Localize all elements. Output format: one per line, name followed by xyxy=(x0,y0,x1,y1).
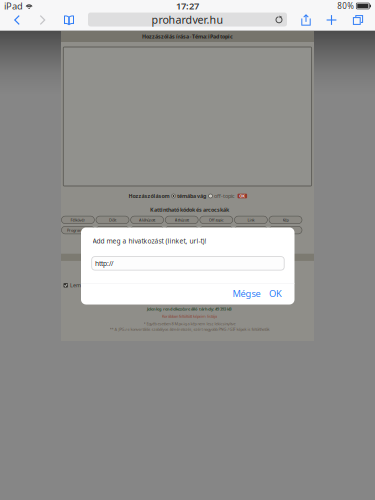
staticText: * Egyéb esetben 8 Mpx-ig a kép nem lesz … xyxy=(144,321,236,326)
staticText: Felsorolás xyxy=(138,227,156,233)
button[interactable]: Aláhúzott xyxy=(131,216,164,224)
staticText: Táblázat xyxy=(175,227,189,233)
staticText: Idézet xyxy=(107,227,117,233)
staticText: Cím xyxy=(247,227,255,233)
staticText: http:// xyxy=(95,259,113,268)
staticText: 17:27 xyxy=(176,0,199,12)
button[interactable]: Dőlt xyxy=(96,216,129,224)
button[interactable]: Áthúzott xyxy=(165,216,198,224)
button[interactable]: Bookmarks xyxy=(59,10,79,29)
staticText: Dőlt xyxy=(109,217,116,222)
button[interactable]: Táblázat xyxy=(165,226,198,234)
staticText: prohardver.hu xyxy=(151,12,223,27)
button[interactable]: Kép xyxy=(269,216,302,224)
button[interactable]: prohardver.hu xyxy=(88,12,287,26)
button[interactable]: Felsorolás xyxy=(131,226,164,234)
button[interactable]: Kiemelés xyxy=(200,226,233,234)
staticText: Kattintható kódok és arcocskák xyxy=(150,206,229,213)
button[interactable]: Link xyxy=(234,216,267,224)
staticText: Off-topic xyxy=(209,217,224,222)
staticText: Programkód xyxy=(67,227,89,233)
staticText: Korábban feltöltött képeim listája xyxy=(162,313,217,319)
staticText: Mégse xyxy=(233,287,261,300)
staticText: témába vág xyxy=(177,192,206,200)
staticText: Kép xyxy=(282,217,288,222)
staticText: ** A JPG-re konvertálás szabályos átmére… xyxy=(110,326,270,332)
staticText: off-topic xyxy=(214,192,235,200)
staticText: Aláhúzott xyxy=(139,217,155,222)
button[interactable]: OK xyxy=(264,283,286,303)
staticText: OK xyxy=(239,193,245,199)
button[interactable]: Programkód xyxy=(61,226,94,234)
button[interactable]: Mégse xyxy=(231,283,263,303)
button[interactable]: Share xyxy=(298,10,314,29)
staticText: Félkövér xyxy=(70,217,85,222)
staticText: Galéria xyxy=(279,227,292,233)
button[interactable]: Cím xyxy=(234,226,267,234)
button[interactable]: New Tab xyxy=(323,10,339,29)
staticText: Áthúzott xyxy=(175,217,189,222)
staticText: Hozzászólás írása · Téma: iPad topic xyxy=(142,33,233,40)
staticText: Link xyxy=(247,217,254,222)
staticText: Add meg a hivatkozást (linket, url-t)! xyxy=(92,237,206,245)
staticText: Kiemelés xyxy=(208,227,224,233)
button[interactable]: Off-topic xyxy=(200,216,233,224)
staticText: Hozzászólásom xyxy=(128,192,169,200)
button[interactable]: Galéria xyxy=(269,226,302,234)
staticText: OK xyxy=(269,287,282,300)
staticText: Jelenleg rendelkezésre álló tárhely: 49 … xyxy=(147,306,232,312)
button[interactable]: Félkövér xyxy=(61,216,94,224)
staticText: 80% xyxy=(337,1,354,11)
button[interactable]: Back xyxy=(7,10,27,29)
button[interactable]: Forward xyxy=(32,10,52,29)
staticText: Lemondom xyxy=(70,282,98,289)
button[interactable]: Show Tabs xyxy=(350,10,366,29)
staticText: iPad xyxy=(4,0,23,12)
button[interactable]: Idézet xyxy=(96,226,129,234)
